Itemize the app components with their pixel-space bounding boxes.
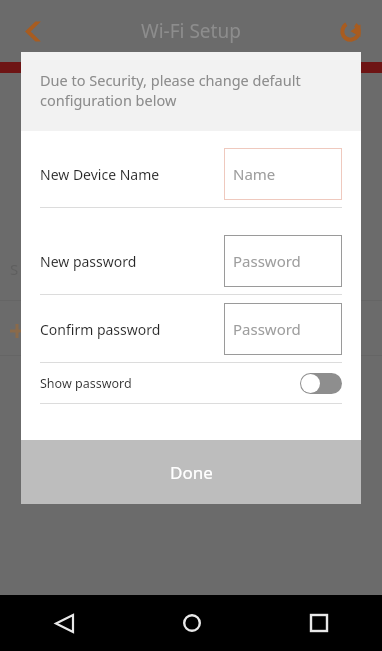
staticText: Name (233, 164, 276, 184)
button[interactable]: Home (128, 595, 255, 651)
staticText: Wi-Fi Setup (141, 18, 241, 44)
staticText: Show password (40, 375, 132, 392)
staticText: Password (233, 319, 301, 339)
staticText: Done (170, 461, 213, 484)
button[interactable]: Name (224, 148, 342, 200)
button[interactable]: Recents (255, 595, 382, 651)
staticText: Confirm password (40, 320, 161, 339)
button[interactable]: Password (224, 303, 342, 355)
staticText: New password (40, 252, 137, 271)
button[interactable]: Back (10, 7, 58, 55)
staticText: Due to Security, please change default c… (40, 70, 342, 111)
staticText: New Device Name (40, 165, 160, 184)
button[interactable]: Password (224, 235, 342, 287)
staticText: S (10, 259, 19, 279)
button[interactable]: Refresh (326, 7, 374, 55)
button[interactable]: Back (0, 595, 128, 651)
button[interactable]: Done (21, 440, 361, 504)
staticText: Password (233, 251, 301, 271)
button[interactable]: Show password (21, 363, 361, 403)
